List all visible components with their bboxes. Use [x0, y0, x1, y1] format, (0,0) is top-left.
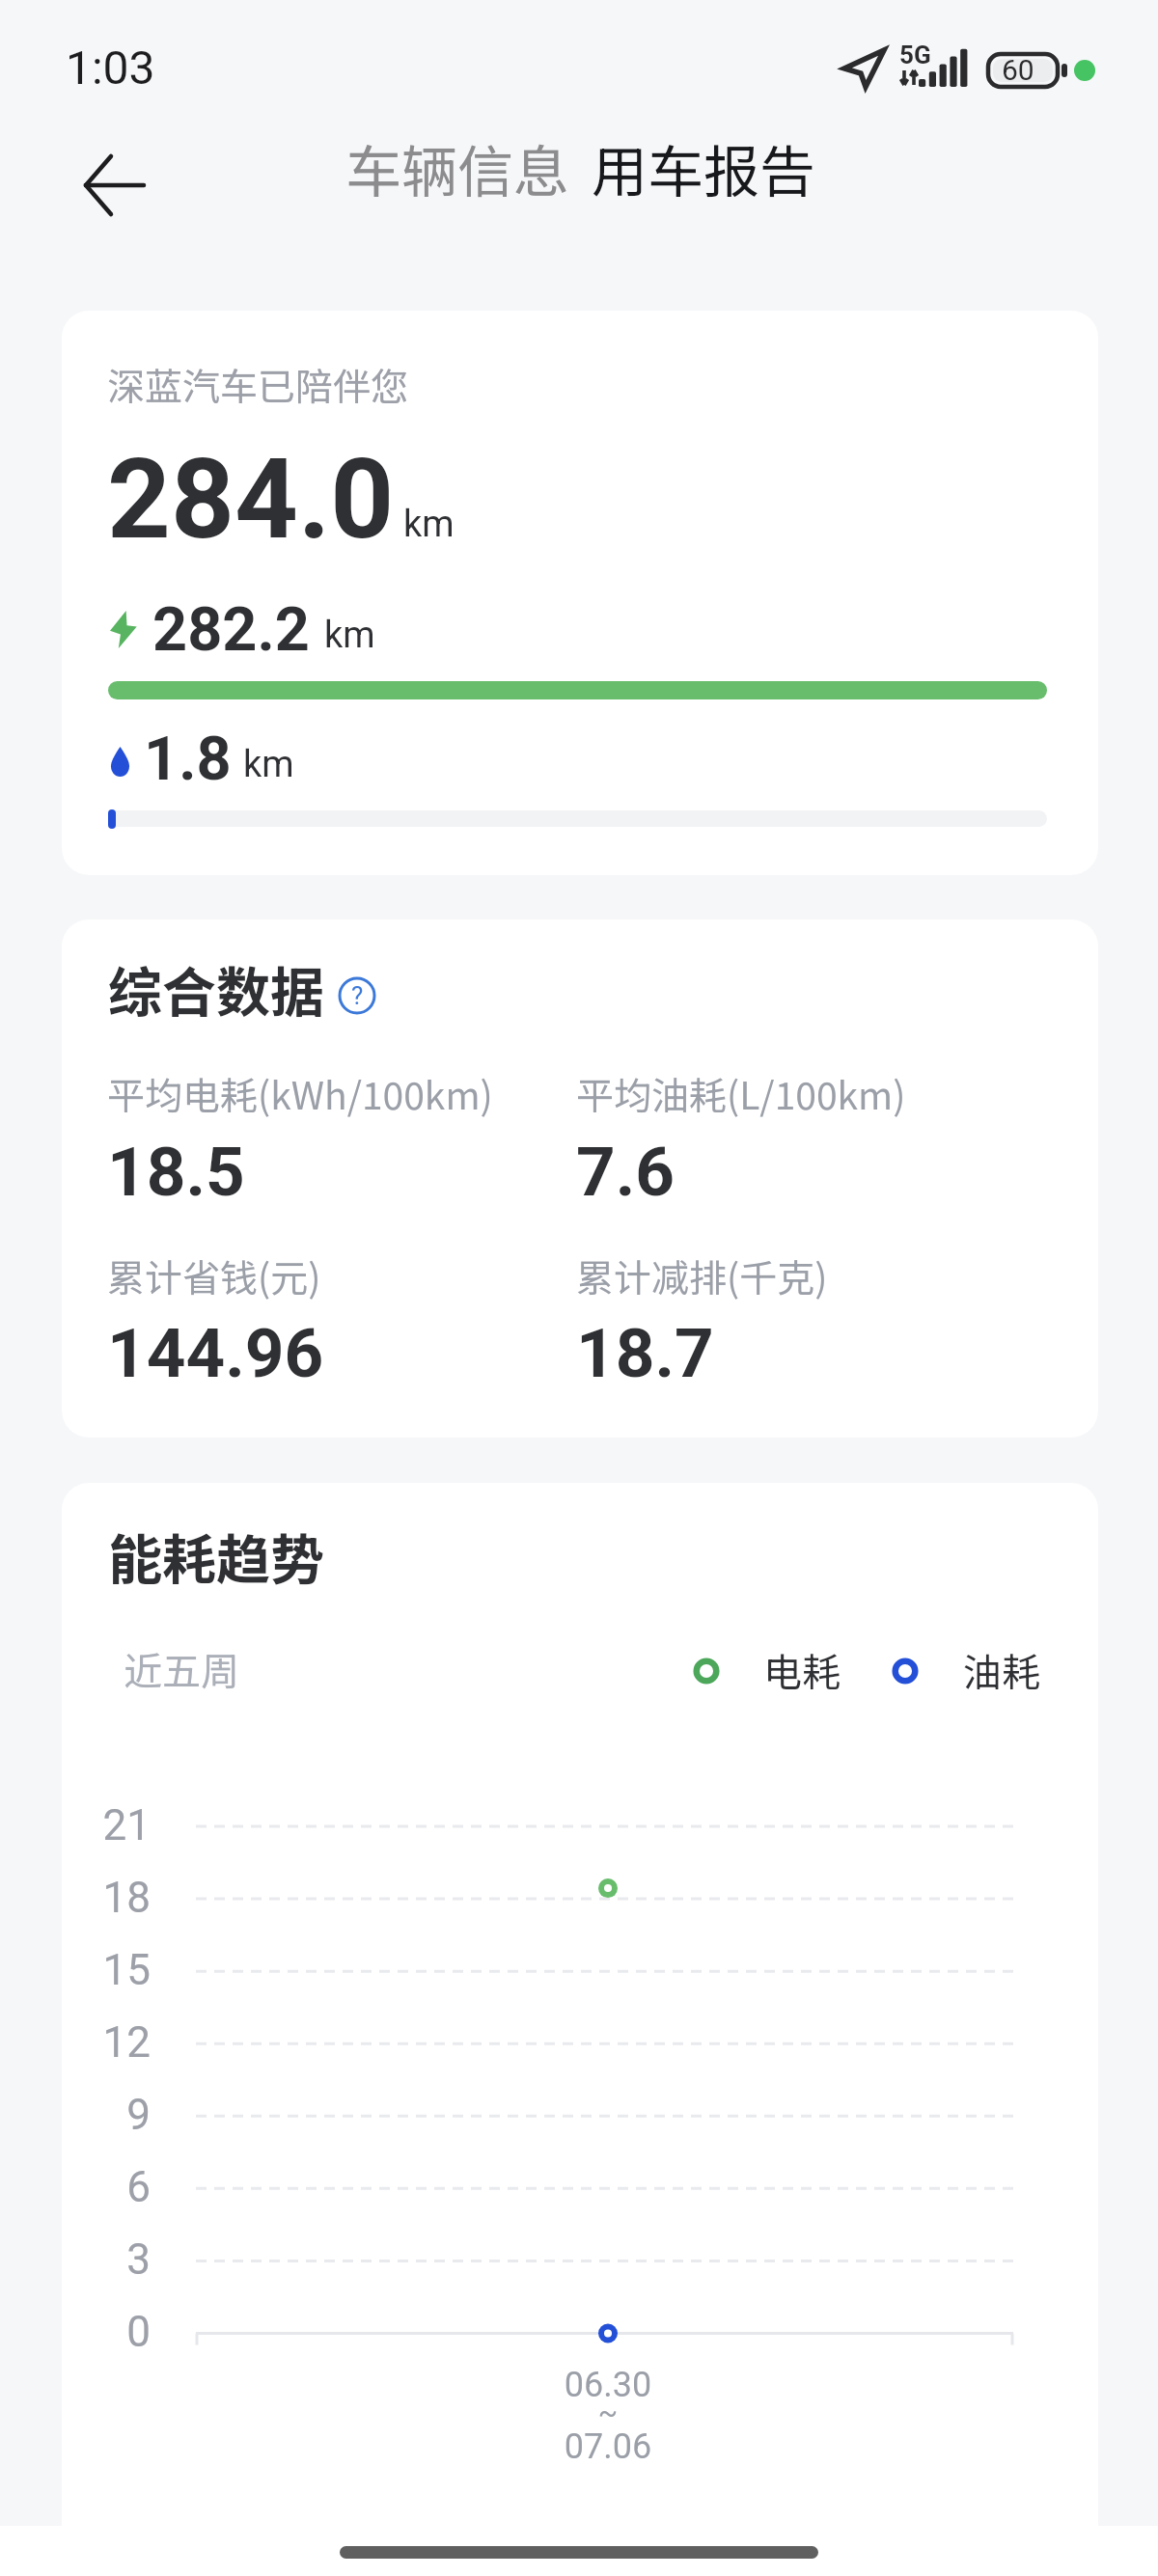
staticText: 油耗: [963, 1642, 1040, 1698]
staticText: 3: [93, 2234, 151, 2285]
staticText: 144.96: [107, 1313, 324, 1393]
staticText: 06.30: [511, 2365, 704, 2405]
staticText: 18.7: [576, 1313, 714, 1393]
staticText: ~: [511, 2396, 704, 2429]
staticText: 6: [93, 2162, 151, 2212]
staticText: 282.2: [152, 594, 310, 666]
staticText: 1:03: [66, 41, 155, 95]
staticText: 1.8: [144, 724, 232, 795]
staticText: 平均油耗(L/100km): [576, 1066, 906, 1120]
staticText: km: [243, 743, 294, 786]
staticText: 累计减排(千克): [576, 1248, 828, 1302]
staticText: 9: [93, 2090, 151, 2140]
staticText: 07.06: [511, 2426, 704, 2467]
staticText: km: [403, 503, 455, 546]
staticText: 近五周: [124, 1641, 239, 1697]
staticText: 7.6: [576, 1132, 675, 1212]
staticText: ?: [351, 981, 364, 1010]
staticText: 用车报告: [592, 127, 816, 208]
button[interactable]: 车辆信息: [345, 127, 570, 208]
staticText: 15: [93, 1945, 151, 1995]
staticText: 能耗趋势: [108, 1517, 324, 1595]
staticText: 累计省钱(元): [107, 1248, 321, 1302]
staticText: 深蓝汽车已陪伴您: [107, 357, 409, 411]
staticText: 18: [93, 1873, 151, 1923]
staticText: 0: [93, 2307, 151, 2357]
staticText: 18.5: [107, 1132, 245, 1212]
staticText: 284.0: [107, 434, 395, 564]
button[interactable]: 返回: [63, 132, 169, 219]
button[interactable]: 用车报告: [592, 127, 816, 208]
staticText: 电耗: [763, 1642, 841, 1698]
button[interactable]: 说明: [336, 974, 378, 1017]
staticText: 60: [1002, 53, 1034, 87]
staticText: 平均电耗(kWh/100km): [107, 1066, 493, 1120]
staticText: km: [324, 614, 375, 657]
staticText: 综合数据: [108, 949, 324, 1028]
staticText: 21: [93, 1800, 151, 1850]
staticText: 5G: [899, 41, 931, 69]
staticText: 12: [93, 2017, 151, 2068]
staticText: 车辆信息: [345, 127, 570, 208]
